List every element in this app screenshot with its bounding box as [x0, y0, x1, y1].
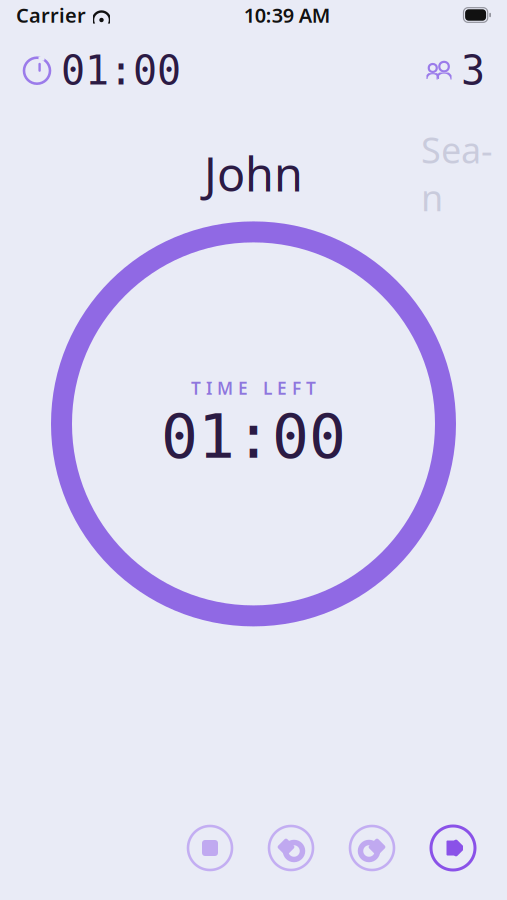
staticText: 3 — [461, 48, 485, 93]
staticText: 01:00 — [61, 48, 181, 93]
button[interactable]: Round timer, one minute — [22, 48, 181, 93]
button[interactable]: Previous player — [265, 822, 317, 874]
staticText: Carrier — [16, 2, 86, 28]
staticText: T I M E L E F T — [191, 377, 316, 400]
button[interactable]: Next player — [346, 822, 398, 874]
button[interactable]: Start — [427, 822, 479, 874]
staticText: 10:39 AM — [244, 2, 331, 28]
button[interactable]: Stop — [184, 822, 236, 874]
staticText: John — [204, 142, 303, 204]
button[interactable]: Players, 3 — [422, 48, 485, 93]
staticText: 01:00 — [161, 402, 346, 471]
staticText: Sean — [421, 126, 493, 221]
